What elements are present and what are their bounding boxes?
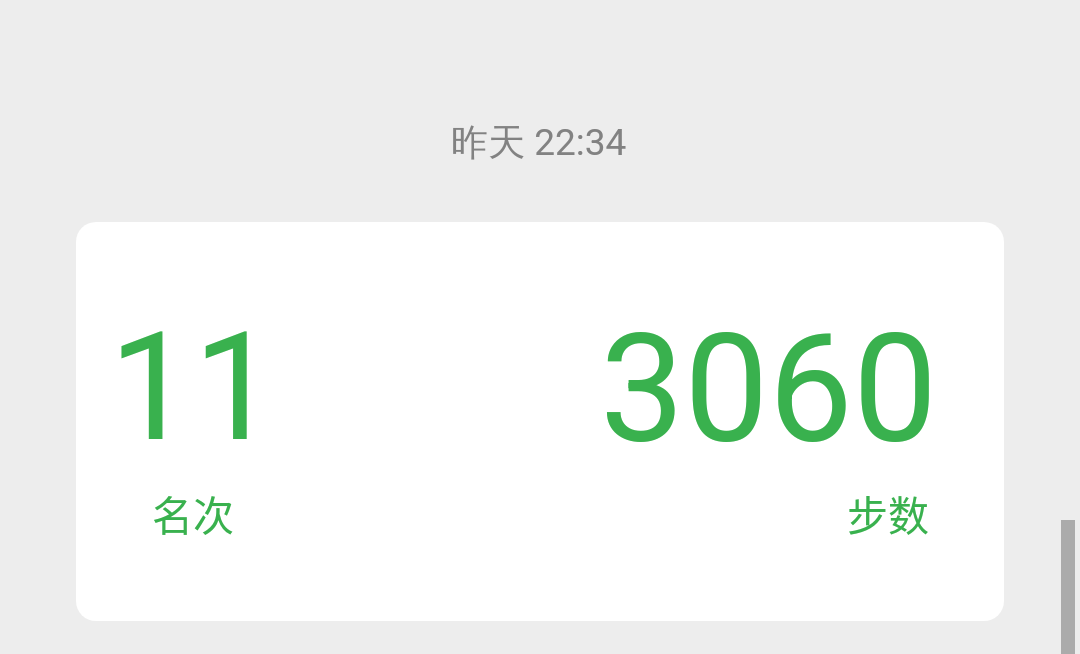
staticText: 3060 — [600, 302, 938, 478]
staticText: 步数 — [847, 483, 929, 542]
staticText: 名次 — [152, 483, 234, 542]
staticText: 昨天 22:34 — [451, 119, 627, 166]
staticText: 11 — [109, 300, 278, 476]
button[interactable]: 11 — [76, 222, 1004, 621]
